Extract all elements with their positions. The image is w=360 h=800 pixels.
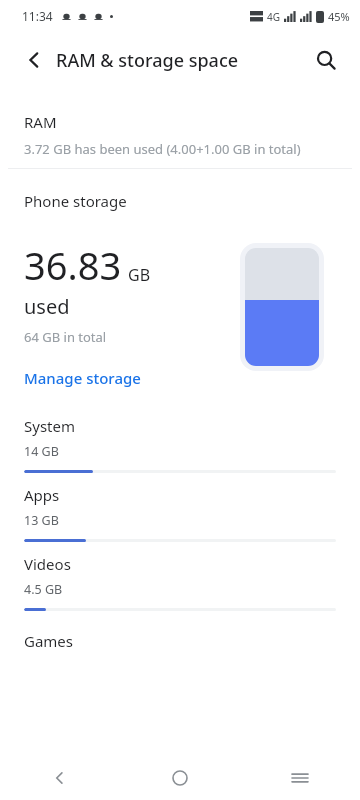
button[interactable]: Back xyxy=(0,756,120,800)
staticText: System xyxy=(24,416,75,436)
button[interactable]: Recent apps xyxy=(240,756,360,800)
staticText: Videos xyxy=(24,554,71,574)
staticText: GB xyxy=(128,264,151,286)
staticText: 4.5 GB xyxy=(24,581,63,598)
staticText: Games xyxy=(24,631,74,651)
button[interactable]: Back xyxy=(12,38,56,82)
button[interactable]: RAM xyxy=(0,110,360,160)
staticText: 45% xyxy=(328,9,350,24)
staticText: 64 GB in total xyxy=(24,328,107,346)
staticText: used xyxy=(24,293,70,320)
button[interactable]: Home xyxy=(120,756,240,800)
staticText: 14 GB xyxy=(24,443,59,460)
staticText: 13 GB xyxy=(24,512,59,529)
staticText: Manage storage xyxy=(24,368,141,388)
button[interactable]: Videos xyxy=(0,548,360,617)
staticText: RAM xyxy=(24,112,57,132)
staticText: 4G xyxy=(267,10,280,24)
staticText: Apps xyxy=(24,485,60,505)
button[interactable]: Apps xyxy=(0,479,360,548)
staticText: 3.72 GB has been used (4.00+1.00 GB in t… xyxy=(24,140,301,158)
staticText: 36.83 xyxy=(24,239,122,291)
button[interactable]: Manage storage xyxy=(24,368,141,388)
staticText: Phone storage xyxy=(24,191,127,211)
staticText: 11:34 xyxy=(22,8,53,24)
button[interactable]: Search xyxy=(304,38,348,82)
button[interactable]: System xyxy=(0,410,360,479)
staticText: RAM & storage space xyxy=(56,48,239,73)
